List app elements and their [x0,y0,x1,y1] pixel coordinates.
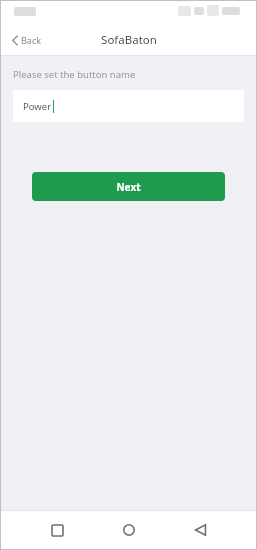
button[interactable]: Power [13,90,244,122]
staticText: Back [21,34,42,46]
staticText: Next [116,180,141,194]
button[interactable]: Recent apps [42,515,72,545]
staticText: SofaBaton [101,32,157,48]
button[interactable]: Next [32,172,225,201]
staticText: Please set the button name [13,68,136,81]
button[interactable]: Home [114,515,144,545]
button[interactable]: Back [185,515,215,545]
button[interactable]: Back [8,30,46,50]
staticText: Power [23,100,52,113]
